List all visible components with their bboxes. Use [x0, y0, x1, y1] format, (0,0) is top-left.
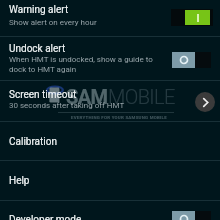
staticText: MOBILE	[108, 85, 175, 108]
staticText: Help	[9, 175, 30, 187]
button[interactable]: Help	[0, 161, 220, 200]
staticText: Screen timeout	[9, 89, 77, 101]
button[interactable]: Toggle, off	[172, 211, 211, 220]
staticText: Warning alert	[9, 4, 69, 16]
button[interactable]: Open screen timeout	[195, 92, 215, 112]
staticText: 30 seconds after taking off HMT	[9, 101, 125, 110]
staticText: Calibration	[9, 136, 57, 148]
staticText: Developer mode	[9, 214, 82, 220]
staticText: Undock alert	[9, 43, 66, 55]
staticText: EVERYTHING FOR YOUR SAMSUNG MOBILE	[71, 115, 167, 120]
button[interactable]: Undock alert	[0, 37, 220, 80]
button[interactable]: Developer mode	[0, 201, 220, 220]
button[interactable]: Warning alert toggle, on	[171, 9, 213, 26]
button[interactable]: Calibration	[0, 122, 220, 161]
button[interactable]: Warning alert	[0, 0, 220, 37]
staticText: SAM	[66, 85, 108, 108]
button[interactable]: Screen timeout	[0, 81, 220, 121]
button[interactable]: Toggle, off	[172, 52, 211, 68]
staticText: Show alert on every hour	[9, 18, 97, 27]
staticText: When HMT is undocked, show a guide to do…	[9, 55, 153, 73]
